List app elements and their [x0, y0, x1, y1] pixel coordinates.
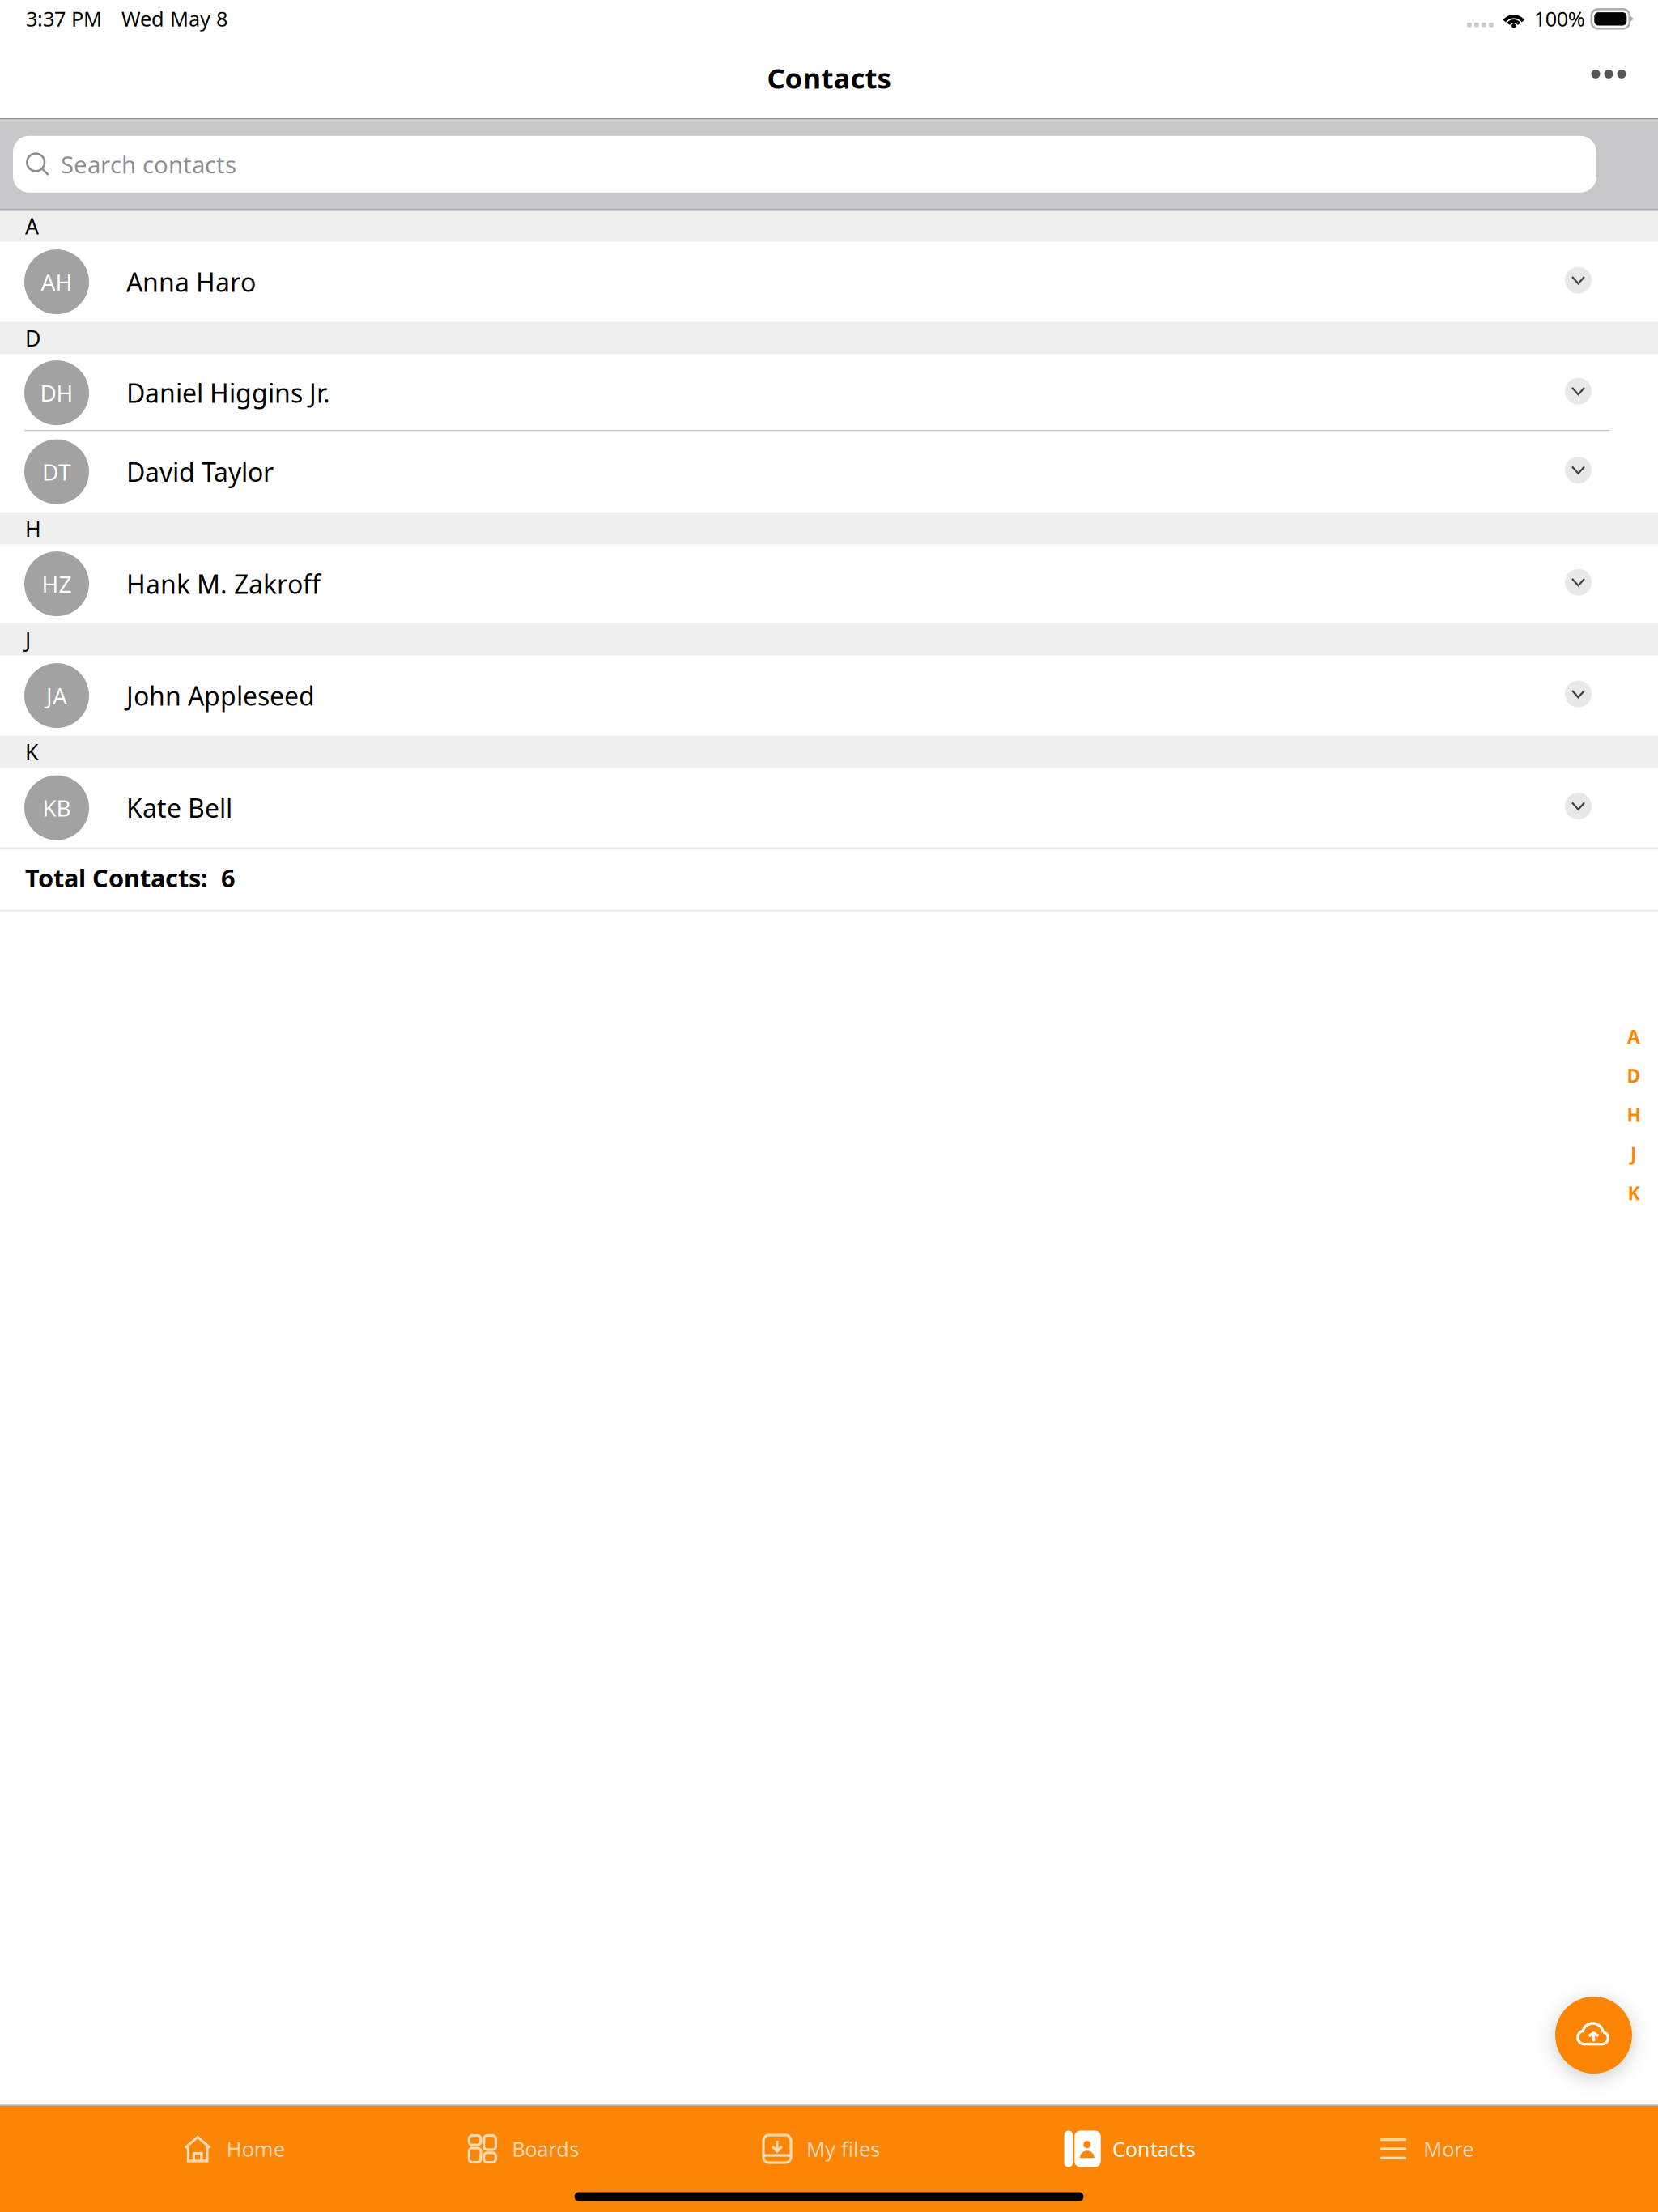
staticText: H: [25, 514, 41, 543]
staticText: John Appleseed: [126, 678, 315, 713]
staticText: H: [1627, 1103, 1641, 1127]
staticText: Contacts: [767, 59, 891, 96]
staticText: Home: [226, 2135, 285, 2162]
staticText: David Taylor: [126, 455, 274, 489]
staticText: Daniel Higgins Jr.: [126, 376, 330, 410]
staticText: Search contacts: [61, 148, 236, 180]
staticText: Hank M. Zakroff: [126, 567, 321, 601]
button[interactable]: A: [1616, 1017, 1652, 1056]
staticText: D: [1627, 1063, 1641, 1088]
staticText: J: [1630, 1142, 1637, 1166]
button[interactable]: My files: [763, 2107, 880, 2191]
button[interactable]: Search contacts: [13, 136, 1596, 193]
button[interactable]: K: [1616, 1173, 1652, 1212]
button[interactable]: JA: [0, 656, 1658, 736]
staticText: K: [25, 738, 39, 766]
staticText: Kate Bell: [126, 791, 232, 825]
staticText: DH: [40, 378, 73, 408]
staticText: 100%: [1534, 5, 1585, 32]
button[interactable]: More options: [1573, 42, 1644, 113]
staticText: JA: [46, 681, 67, 711]
staticText: Anna Haro: [126, 265, 256, 299]
staticText: My files: [806, 2135, 880, 2162]
staticText: Boards: [512, 2135, 579, 2162]
button[interactable]: J: [1616, 1134, 1652, 1173]
staticText: A: [25, 212, 39, 240]
staticText: Contacts: [1112, 2135, 1195, 2162]
staticText: 3:37 PM: [26, 5, 102, 32]
button[interactable]: HZ: [0, 545, 1658, 623]
staticText: Total Contacts: 6: [25, 861, 236, 894]
button[interactable]: Home: [184, 2107, 285, 2191]
button[interactable]: Boards: [469, 2107, 579, 2191]
staticText: D: [25, 324, 40, 352]
button[interactable]: DH: [0, 354, 1658, 431]
staticText: More: [1423, 2135, 1474, 2162]
button[interactable]: DT: [0, 431, 1658, 512]
staticText: K: [1628, 1181, 1640, 1205]
staticText: AH: [41, 267, 72, 297]
button[interactable]: AH: [0, 242, 1658, 322]
staticText: A: [1627, 1024, 1640, 1049]
button[interactable]: Contacts: [1064, 2107, 1195, 2191]
button[interactable]: H: [1616, 1095, 1652, 1134]
button[interactable]: KB: [0, 768, 1658, 847]
staticText: KB: [43, 793, 71, 823]
button[interactable]: D: [1616, 1056, 1652, 1095]
staticText: J: [25, 625, 31, 654]
staticText: DT: [42, 457, 71, 487]
button[interactable]: More: [1380, 2107, 1474, 2191]
button[interactable]: Upload: [1555, 1997, 1632, 2074]
staticText: HZ: [42, 569, 72, 599]
staticText: Wed May 8: [121, 5, 227, 32]
